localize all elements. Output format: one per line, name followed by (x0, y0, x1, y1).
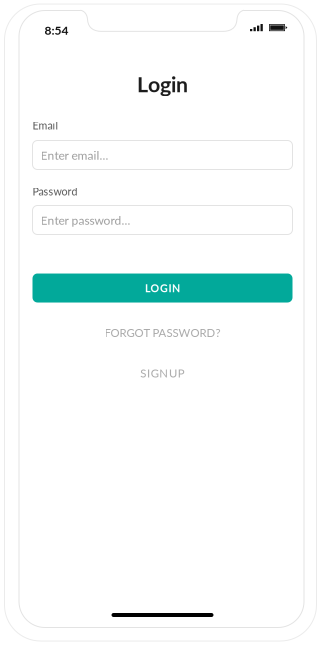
staticText: Email (32, 119, 58, 132)
button[interactable]: SIGNUP (32, 366, 292, 380)
staticText: Enter email... (40, 148, 108, 162)
staticText: Enter password... (40, 213, 130, 227)
staticText: Password (32, 185, 77, 198)
button[interactable]: LOGIN (32, 273, 292, 302)
button[interactable]: FORGOT PASSWORD? (32, 325, 292, 339)
staticText: LOGIN (145, 282, 180, 294)
staticText: SIGNUP (140, 366, 185, 380)
staticText: 8:54 (44, 23, 68, 37)
staticText: FORGOT PASSWORD? (104, 326, 220, 339)
staticText: Login (137, 71, 188, 97)
